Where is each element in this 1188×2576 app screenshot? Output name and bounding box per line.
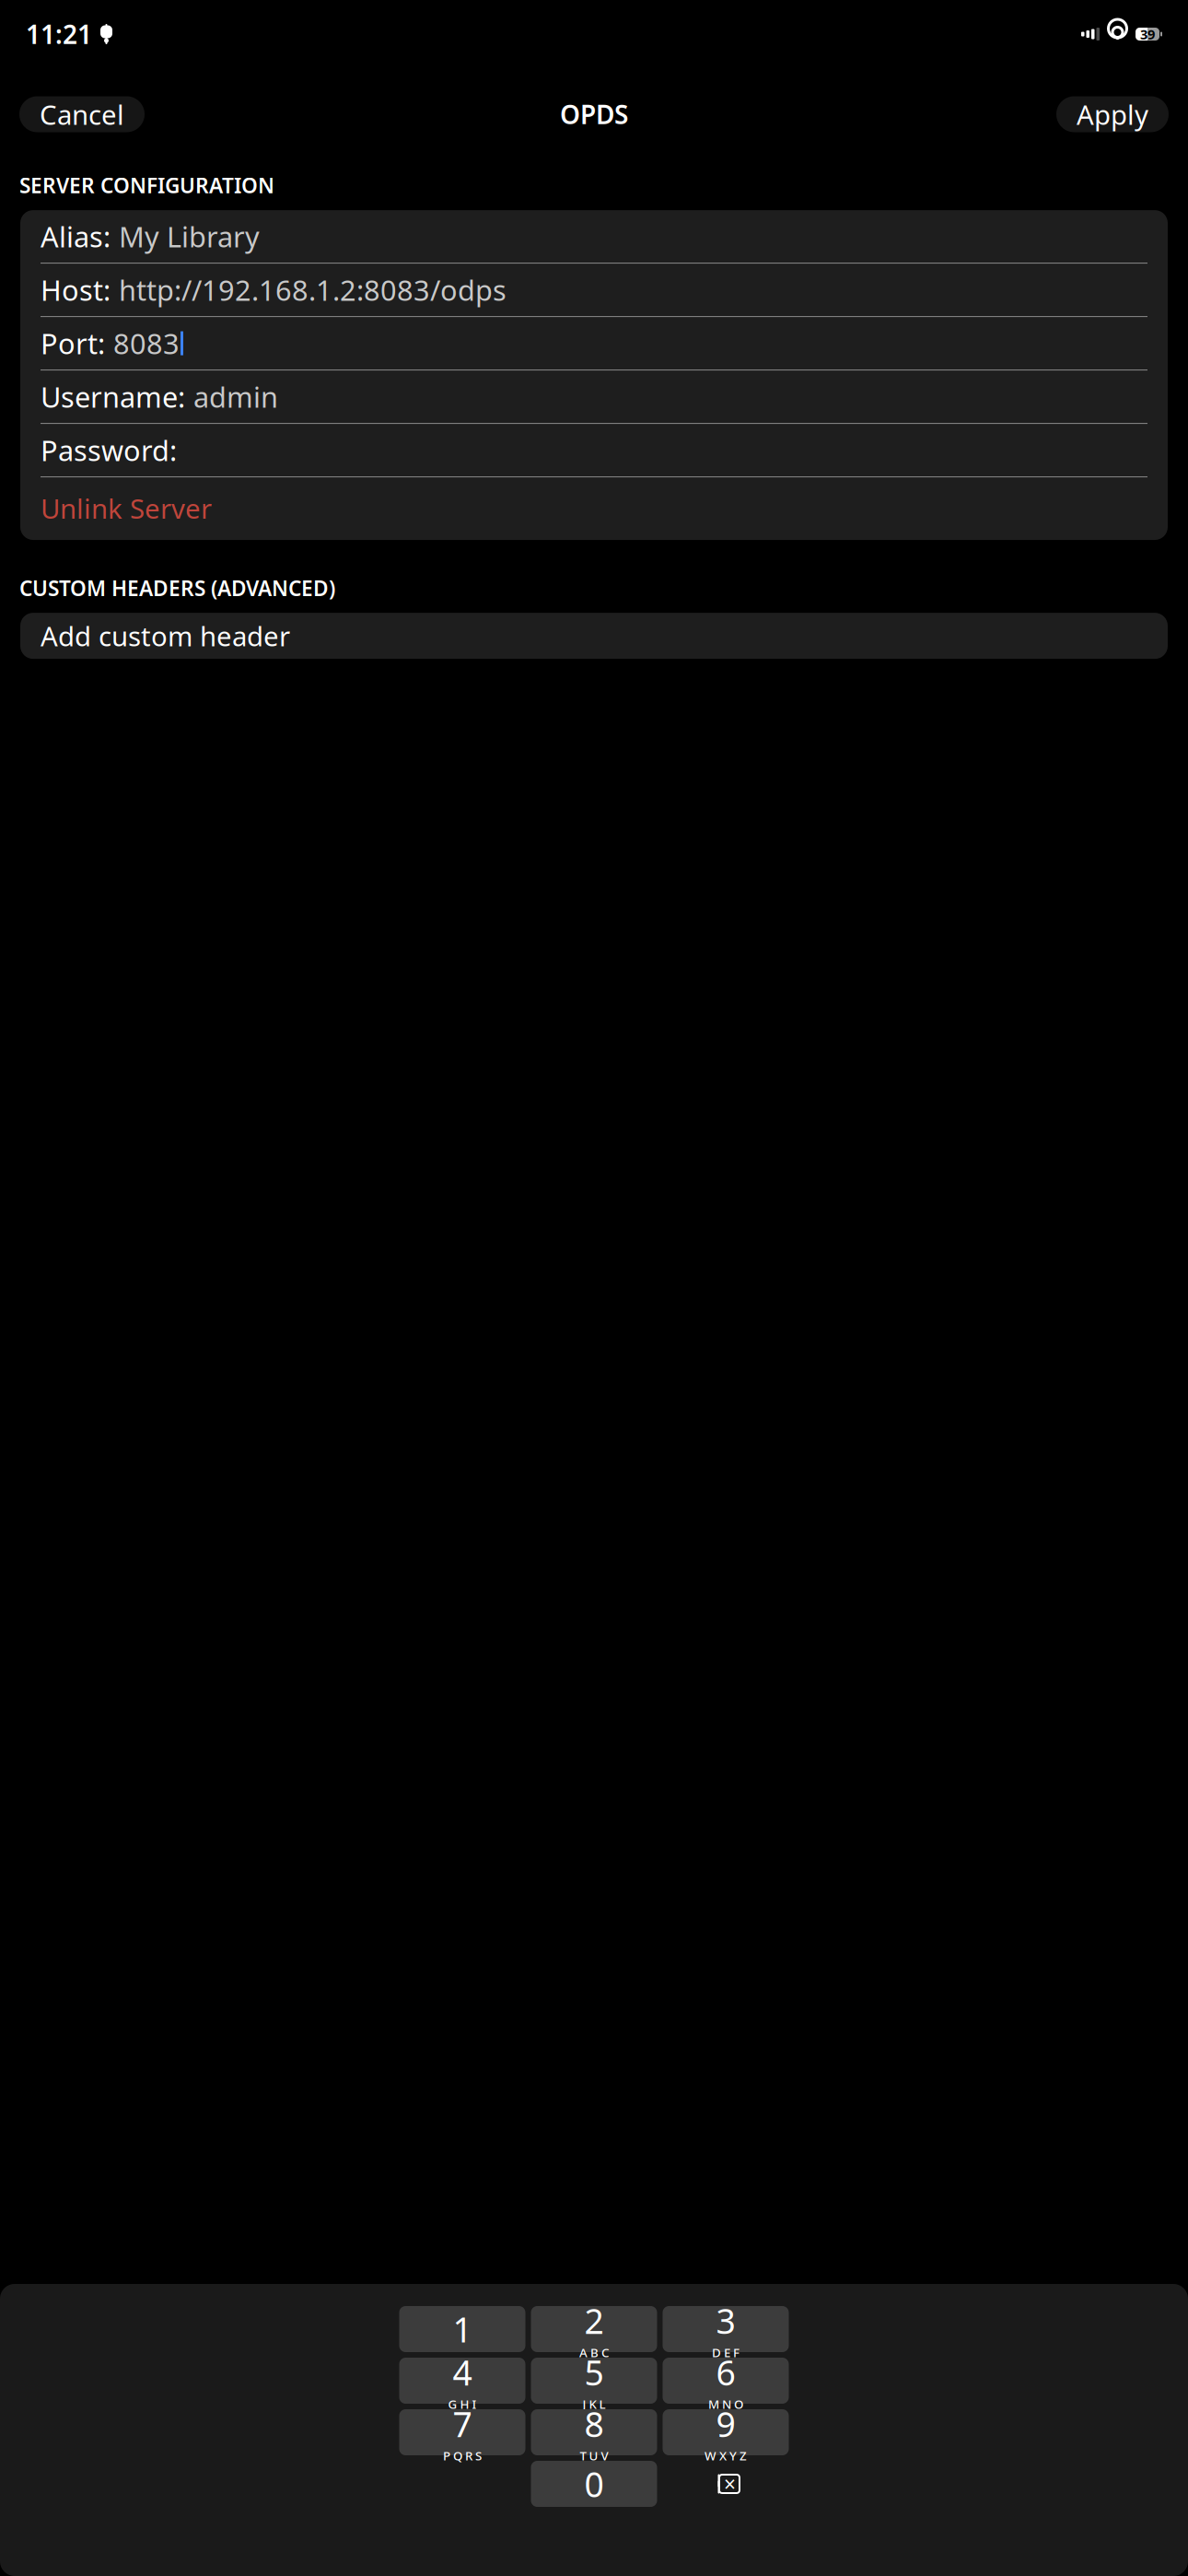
staticText: 5 — [584, 2349, 604, 2395]
staticText: G H I — [448, 2396, 477, 2412]
staticText: A B C — [579, 2344, 609, 2361]
button[interactable]: Port: — [20, 317, 1168, 370]
staticText: Username: — [41, 378, 185, 415]
staticText: My Library — [119, 218, 260, 255]
staticText: OPDS — [560, 97, 628, 131]
staticText: CUSTOM HEADERS (ADVANCED) — [19, 574, 335, 602]
button[interactable]: Cancel — [19, 96, 145, 132]
staticText: J K L — [582, 2396, 606, 2412]
button[interactable]: 4 — [399, 2358, 525, 2404]
staticText: admin — [193, 378, 278, 415]
staticText: 3 — [716, 2298, 735, 2343]
staticText: 7 — [453, 2401, 472, 2447]
button[interactable]: Unlink Server — [20, 477, 1168, 540]
staticText: Add custom header — [41, 618, 290, 654]
staticText: 9 — [716, 2401, 735, 2447]
staticText: × — [724, 2470, 736, 2498]
staticText: 1 — [453, 2306, 472, 2352]
button[interactable]: 7 — [399, 2409, 525, 2455]
button[interactable]: 9 — [663, 2409, 789, 2455]
button[interactable]: 5 — [531, 2358, 657, 2404]
staticText: Unlink Server — [41, 490, 212, 526]
staticText: 4 — [453, 2349, 472, 2395]
staticText: P Q R S — [443, 2447, 482, 2464]
staticText: 0 — [584, 2461, 604, 2507]
staticText: Port: — [41, 324, 105, 362]
staticText: 6 — [716, 2349, 735, 2395]
button[interactable]: Password: — [20, 424, 1168, 476]
button[interactable]: Add custom header — [20, 613, 1168, 659]
button[interactable]: Host: — [20, 264, 1168, 316]
staticText: 8 — [584, 2401, 604, 2447]
staticText: 39 — [1140, 25, 1155, 43]
button[interactable]: 6 — [663, 2358, 789, 2404]
staticText: T U V — [580, 2447, 608, 2464]
staticText: Cancel — [40, 96, 124, 132]
button[interactable]: Delete — [663, 2461, 789, 2507]
staticText: Host: — [41, 271, 111, 309]
button[interactable]: Username: — [20, 370, 1168, 423]
button[interactable]: Apply — [1056, 96, 1169, 132]
staticText: 8083 — [113, 324, 180, 362]
staticText: M N O — [708, 2396, 743, 2412]
button[interactable]: 2 — [531, 2306, 657, 2352]
staticText: 2 — [584, 2298, 604, 2343]
staticText: W X Y Z — [705, 2447, 747, 2464]
staticText: Apply — [1077, 96, 1148, 132]
staticText: Password: — [41, 431, 177, 469]
button[interactable]: 0 — [531, 2461, 657, 2507]
button[interactable]: 1 — [399, 2306, 525, 2352]
staticText: Alias: — [41, 218, 111, 255]
staticText: SERVER CONFIGURATION — [19, 171, 274, 199]
staticText: 11:21 — [26, 17, 92, 51]
staticText: http://192.168.1.2:8083/odps — [119, 271, 507, 309]
button[interactable]: 3 — [663, 2306, 789, 2352]
staticText: D E F — [712, 2344, 740, 2361]
button[interactable]: 8 — [531, 2409, 657, 2455]
button[interactable]: Alias: — [20, 210, 1168, 263]
